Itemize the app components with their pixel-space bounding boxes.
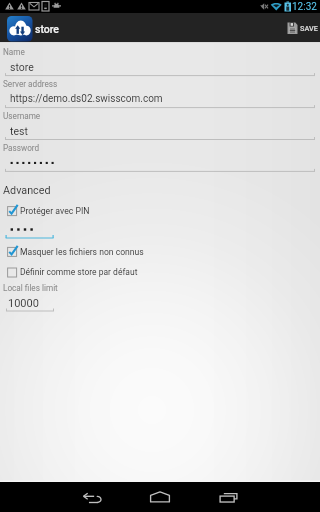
staticText: test	[10, 125, 28, 137]
button[interactable]: store	[0, 13, 70, 42]
button[interactable]	[0, 244, 320, 261]
staticText: Local files limit	[3, 283, 58, 293]
button[interactable]	[0, 44, 320, 76]
button[interactable]: Back	[62, 482, 122, 512]
button[interactable]	[0, 76, 320, 108]
staticText: SAVE	[300, 24, 318, 33]
staticText: 12:32	[292, 1, 317, 13]
button[interactable]	[0, 294, 60, 312]
staticText: Masquer les fichiers non connus	[20, 247, 144, 257]
button[interactable]	[0, 140, 320, 172]
staticText: Protéger avec PIN	[20, 206, 90, 216]
staticText: Server address	[3, 79, 58, 89]
staticText: Username	[3, 111, 41, 121]
button[interactable]	[0, 222, 60, 242]
button[interactable]: Recent apps	[198, 482, 258, 512]
staticText: Définir comme store par défaut	[20, 267, 138, 277]
staticText: store	[35, 23, 59, 35]
staticText: Password	[3, 143, 40, 153]
button[interactable]	[0, 108, 320, 140]
staticText: store	[10, 61, 34, 73]
staticText: https://demo.ds02.swisscom.com	[10, 93, 163, 105]
staticText: Advanced	[3, 184, 51, 197]
button[interactable]	[0, 203, 320, 220]
button[interactable]	[0, 264, 320, 281]
staticText: 10000	[8, 297, 39, 310]
button[interactable]: Home	[130, 482, 190, 512]
staticText: Name	[3, 47, 25, 57]
button[interactable]: Save	[283, 13, 320, 42]
